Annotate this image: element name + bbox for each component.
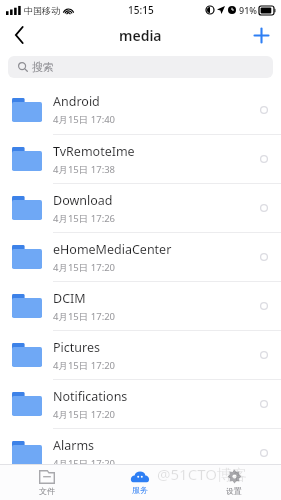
staticText: TvRemoteIme [53, 143, 135, 160]
staticText: 4月15日 17:26 [53, 212, 116, 225]
staticText: 4月15日 17:20 [53, 310, 116, 323]
button[interactable]: 搜索 [8, 56, 273, 78]
staticText: Alarms [53, 437, 95, 454]
staticText: DCIM [53, 290, 86, 307]
button[interactable]: Select Notifications [251, 391, 277, 417]
staticText: 搜索 [32, 60, 54, 74]
staticText: 15:15 [128, 3, 154, 17]
button[interactable]: 服务 [93, 465, 187, 500]
staticText: 4月15日 17:20 [53, 408, 116, 421]
button[interactable]: 文件 [0, 465, 93, 500]
button[interactable]: TvRemoteIme [0, 134, 281, 183]
button[interactable]: Select Download [251, 195, 277, 221]
staticText: 文件 [39, 486, 55, 496]
button[interactable]: Select Android [251, 97, 277, 123]
button[interactable]: Add [241, 20, 281, 50]
button[interactable]: Select eHomeMediaCenter [251, 244, 277, 270]
staticText: 4月15日 17:40 [53, 113, 116, 126]
button[interactable]: Android [0, 85, 281, 134]
button[interactable]: Download [0, 183, 281, 232]
staticText: Notifications [53, 388, 128, 405]
button[interactable]: Select Pictures [251, 342, 277, 368]
staticText: Android [53, 93, 100, 110]
button[interactable]: Select Alarms [251, 440, 277, 466]
staticText: 中国移动 [24, 5, 60, 16]
staticText: media [119, 26, 162, 45]
button[interactable]: Back [0, 20, 38, 50]
button[interactable]: Notifications [0, 379, 281, 428]
button[interactable]: Pictures [0, 330, 281, 379]
staticText: 设置 [226, 486, 242, 496]
staticText: 4月15日 17:20 [53, 359, 116, 372]
staticText: 91% [239, 4, 257, 16]
button[interactable]: Select TvRemoteIme [251, 146, 277, 172]
staticText: 4月15日 17:20 [53, 457, 116, 470]
button[interactable]: DCIM [0, 281, 281, 330]
staticText: 服务 [132, 485, 148, 495]
staticText: 4月15日 17:20 [53, 261, 116, 274]
staticText: @51CTO博客 [157, 464, 247, 484]
button[interactable]: Alarms [0, 428, 281, 477]
staticText: Pictures [53, 339, 100, 356]
button[interactable]: Select DCIM [251, 293, 277, 319]
staticText: Download [53, 192, 113, 209]
button[interactable]: eHomeMediaCenter [0, 232, 281, 281]
staticText: 4月15日 17:38 [53, 163, 116, 176]
staticText: eHomeMediaCenter [53, 241, 172, 258]
button[interactable]: 设置 [187, 465, 281, 500]
